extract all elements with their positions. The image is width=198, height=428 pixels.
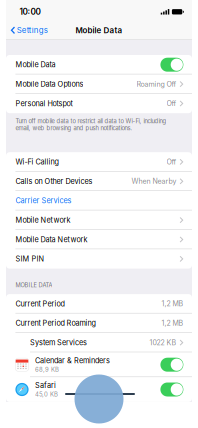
button[interactable]: Mobile Network <box>6 210 192 230</box>
button[interactable]: Mobile Data Options <box>6 74 192 94</box>
staticText: Mobile Data <box>15 60 55 69</box>
staticText: Carrier Services <box>15 196 71 205</box>
button[interactable]: Mobile Data <box>6 55 192 74</box>
staticText: Safari <box>35 381 56 390</box>
staticText: Roaming Off <box>136 80 176 88</box>
staticText: Personal Hotspot <box>15 99 72 108</box>
staticText: MOBILE DATA <box>15 282 52 288</box>
staticText: Mobile Network <box>15 216 70 225</box>
staticText: Mobile Data Network <box>15 235 87 244</box>
button[interactable]: Current Period Roaming <box>6 313 192 333</box>
staticText: SIM PIN <box>15 254 44 263</box>
staticText: System Services <box>30 338 87 347</box>
staticText: Calendar & Reminders <box>35 356 110 365</box>
staticText: Current Period <box>15 299 64 308</box>
staticText: Off <box>166 158 176 166</box>
staticText: 68,9 KB <box>35 366 59 373</box>
staticText: 1,2 MB <box>161 299 183 308</box>
button[interactable]: Mobile Data Network <box>6 230 192 249</box>
staticText: 45,0 KB <box>35 391 58 398</box>
staticText: Calls on Other Devices <box>15 177 92 186</box>
button[interactable]: Settings <box>6 21 48 39</box>
button[interactable]: Calls on Other Devices <box>6 172 192 191</box>
staticText: 10:00 <box>20 7 41 17</box>
button[interactable]: Personal Hotspot <box>6 94 192 113</box>
staticText: Mobile Data <box>75 25 122 35</box>
staticText: Off <box>166 99 176 108</box>
button[interactable]: Wi-Fi Calling <box>6 152 192 172</box>
button[interactable]: Carrier Services <box>6 191 192 210</box>
staticText: Current Period Roaming <box>15 319 95 328</box>
button[interactable]: Safari <box>6 377 192 402</box>
staticText: Turn off mobile data to restrict all dat… <box>15 118 166 132</box>
button[interactable]: Calendar & Reminders <box>6 352 192 377</box>
staticText: When Nearby <box>131 177 176 185</box>
staticText: Mobile Data Options <box>15 80 83 89</box>
staticText: Settings <box>17 25 48 35</box>
staticText: 1,2 MB <box>161 319 183 327</box>
button[interactable]: SIM PIN <box>6 249 192 269</box>
staticText: 1022 KB <box>149 338 176 347</box>
staticText: Wi-Fi Calling <box>15 157 58 166</box>
button[interactable]: Current Period <box>6 294 192 313</box>
button[interactable]: System Services <box>6 333 192 352</box>
